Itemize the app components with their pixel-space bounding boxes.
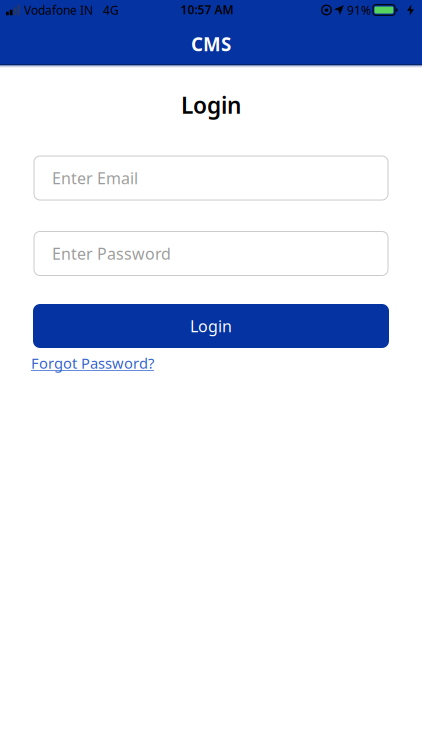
staticText: Login	[190, 315, 232, 337]
staticText: Forgot Password?	[31, 353, 154, 373]
staticText: Login	[181, 90, 241, 120]
staticText: 10:57 AM	[180, 1, 233, 17]
staticText: Enter Password	[52, 243, 171, 264]
button[interactable]: Enter Password	[34, 231, 388, 275]
staticText: Enter Email	[52, 167, 138, 189]
button[interactable]: Enter Email	[34, 156, 388, 200]
staticText: 4G	[103, 2, 119, 18]
button[interactable]: Forgot Password?	[31, 353, 154, 373]
staticText: CMS	[191, 32, 231, 56]
staticText: 91%	[347, 2, 371, 18]
button[interactable]: Login	[33, 304, 389, 348]
staticText: Vodafone IN	[24, 2, 93, 18]
